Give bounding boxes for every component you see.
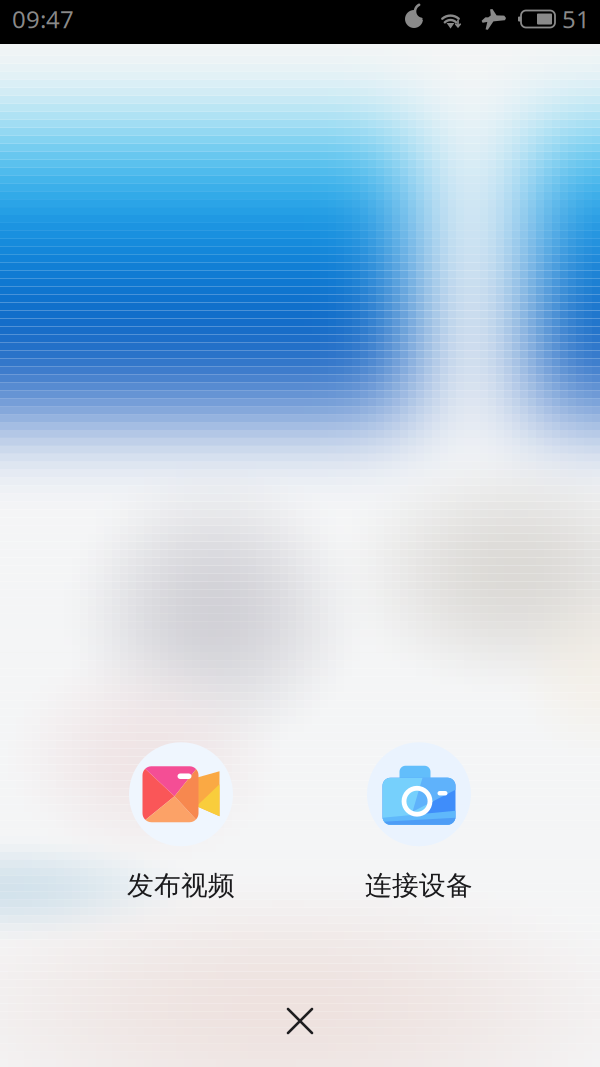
staticText: 连接设备 bbox=[365, 869, 473, 902]
staticText: 51 bbox=[562, 3, 590, 35]
staticText: 09:47 bbox=[12, 3, 74, 35]
button[interactable]: 关闭 bbox=[264, 985, 336, 1057]
button[interactable]: 连接设备 bbox=[339, 742, 499, 902]
button[interactable]: 发布视频 bbox=[101, 742, 261, 902]
staticText: 发布视频 bbox=[127, 869, 235, 902]
